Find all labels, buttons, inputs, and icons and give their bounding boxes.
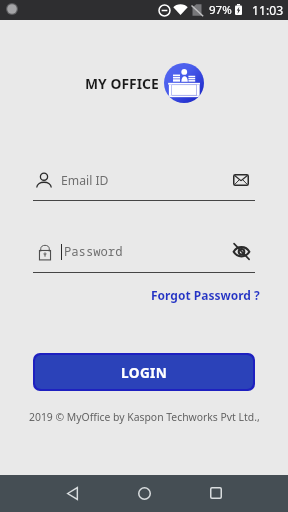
other: Email <box>233 174 249 186</box>
button[interactable]: Home <box>126 475 162 511</box>
staticText: Password <box>64 243 123 260</box>
button[interactable]: Recent apps <box>198 475 234 511</box>
button[interactable]: Back <box>54 475 90 511</box>
staticText: Forgot Password ? <box>151 287 260 303</box>
button[interactable]: LOGIN <box>35 355 253 389</box>
staticText: 97% <box>209 2 232 18</box>
staticText: LOGIN <box>121 363 168 382</box>
staticText: MY OFFICE <box>85 74 159 93</box>
button[interactable]: Show password <box>233 243 250 260</box>
button[interactable]: Forgot Password ? <box>148 284 263 306</box>
staticText: 11:03 <box>252 2 284 19</box>
staticText: 2019 © MyOffice by Kaspon Techworks Pvt … <box>29 410 260 424</box>
staticText: Email ID <box>61 172 109 188</box>
